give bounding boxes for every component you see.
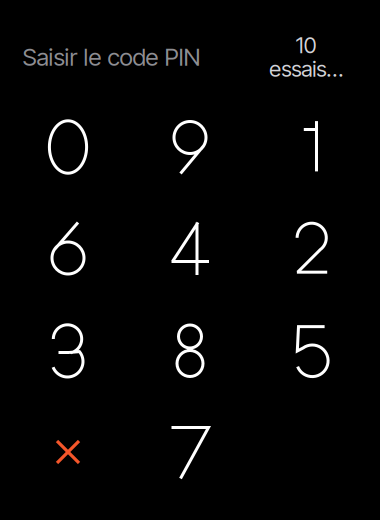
button[interactable]: 7	[131, 402, 249, 502]
button[interactable]: Delete	[9, 402, 127, 502]
button[interactable]: 6	[9, 198, 127, 298]
button[interactable]: 0	[9, 97, 127, 197]
staticText: Saisir le code PIN	[22, 42, 200, 71]
staticText: 10 essais…	[269, 32, 343, 82]
button[interactable]: 8	[131, 300, 249, 400]
button[interactable]: 4	[131, 198, 249, 298]
button[interactable]: 2	[253, 198, 371, 298]
button[interactable]: 9	[131, 97, 249, 197]
button[interactable]: 1	[253, 97, 371, 197]
button[interactable]: 5	[253, 300, 371, 400]
button[interactable]: 3	[9, 300, 127, 400]
